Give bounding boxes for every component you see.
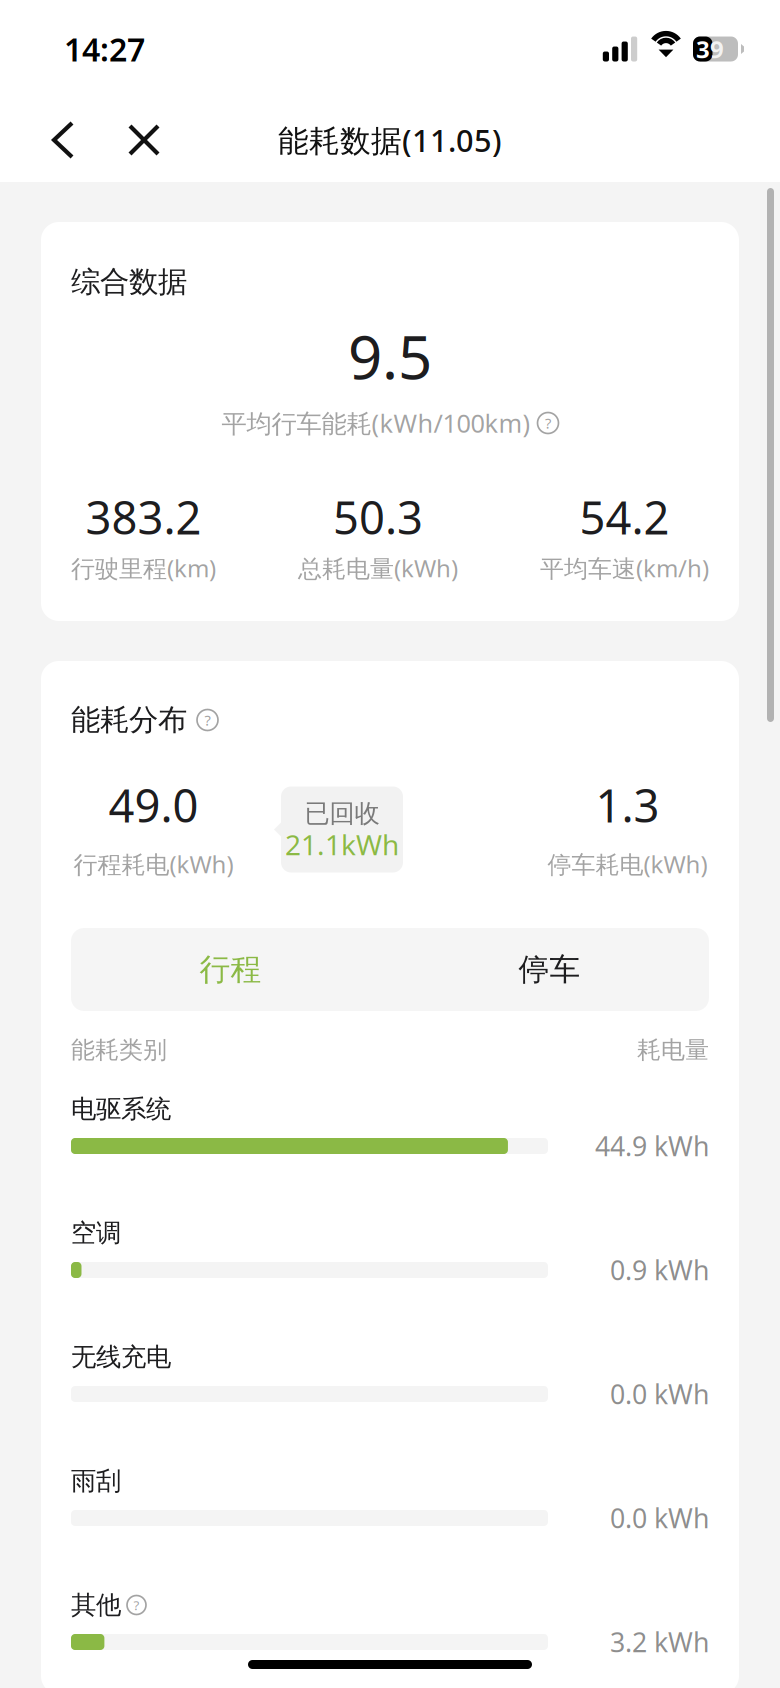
staticText: 50.3	[333, 487, 423, 547]
staticText: 0.0 kWh	[610, 1376, 709, 1412]
staticText: 空调	[71, 1217, 121, 1248]
staticText: 雨刮	[71, 1465, 121, 1496]
button[interactable]: Back	[28, 98, 98, 182]
staticText: 能耗数据(11.05)	[278, 120, 502, 160]
staticText: 1.3	[595, 775, 659, 835]
staticText: 能耗分布	[71, 702, 187, 738]
staticText: 14:27	[64, 28, 145, 70]
staticText: 3	[696, 33, 710, 65]
staticText: 停车	[518, 951, 580, 988]
staticText: 电驱系统	[71, 1093, 171, 1124]
staticText: 9.5	[348, 316, 432, 396]
staticText: 383.2	[85, 487, 201, 547]
staticText: ?	[133, 1596, 139, 1614]
staticText: 3.2 kWh	[610, 1624, 709, 1660]
staticText: 54.2	[579, 487, 669, 547]
staticText: 其他	[71, 1589, 121, 1620]
staticText: 行程	[199, 951, 261, 988]
staticText: 9	[710, 33, 724, 65]
staticText: 总耗电量(kWh)	[298, 552, 458, 584]
staticText: ?	[204, 710, 210, 730]
button[interactable]: 行程	[71, 928, 390, 1011]
staticText: 0.0 kWh	[610, 1500, 709, 1536]
staticText: 49.0	[108, 775, 198, 835]
staticText: 行驶里程(km)	[71, 552, 216, 584]
button[interactable]: Close	[98, 98, 190, 182]
staticText: ?	[545, 413, 551, 433]
staticText: 耗电量	[637, 1035, 709, 1065]
staticText: 无线充电	[71, 1341, 171, 1372]
staticText: 已回收	[304, 798, 379, 829]
button[interactable]: 停车	[390, 928, 709, 1011]
staticText: 0.9 kWh	[610, 1252, 709, 1288]
staticText: 行程耗电(kWh)	[73, 848, 233, 880]
staticText: 44.9 kWh	[595, 1128, 709, 1164]
staticText: 能耗类别	[71, 1035, 167, 1065]
staticText: 平均车速(km/h)	[540, 552, 709, 584]
staticText: 停车耗电(kWh)	[547, 848, 707, 880]
staticText: 综合数据	[71, 264, 187, 300]
staticText: 平均行车能耗(kWh/100km)	[221, 406, 530, 440]
staticText: 21.1kWh	[285, 826, 399, 863]
